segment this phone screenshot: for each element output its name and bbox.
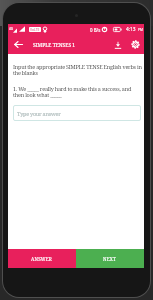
staticText: 1. We _____ really hard to make this a s… [13,85,132,99]
staticText: 4G [9,27,14,31]
staticText: SIMPLE TENSES 1 [33,42,76,49]
button[interactable]: Download [110,35,126,54]
button[interactable]: Type your answer [13,105,141,121]
staticText: Type your answer [17,110,61,117]
button[interactable]: ANSWER [8,249,76,268]
staticText: 0 B/s [90,27,101,33]
staticText: VoLTE [30,27,40,32]
staticText: ANSWER [31,256,53,262]
button[interactable]: NEXT [76,249,144,268]
button[interactable]: Settings [127,35,144,54]
staticText: PM [138,28,143,32]
staticText: NEXT [103,256,117,262]
staticText: Input the appropriate SIMPLE TENSE Engli… [13,63,142,77]
button[interactable]: Back [12,35,25,54]
staticText: 4:13 [126,26,136,33]
